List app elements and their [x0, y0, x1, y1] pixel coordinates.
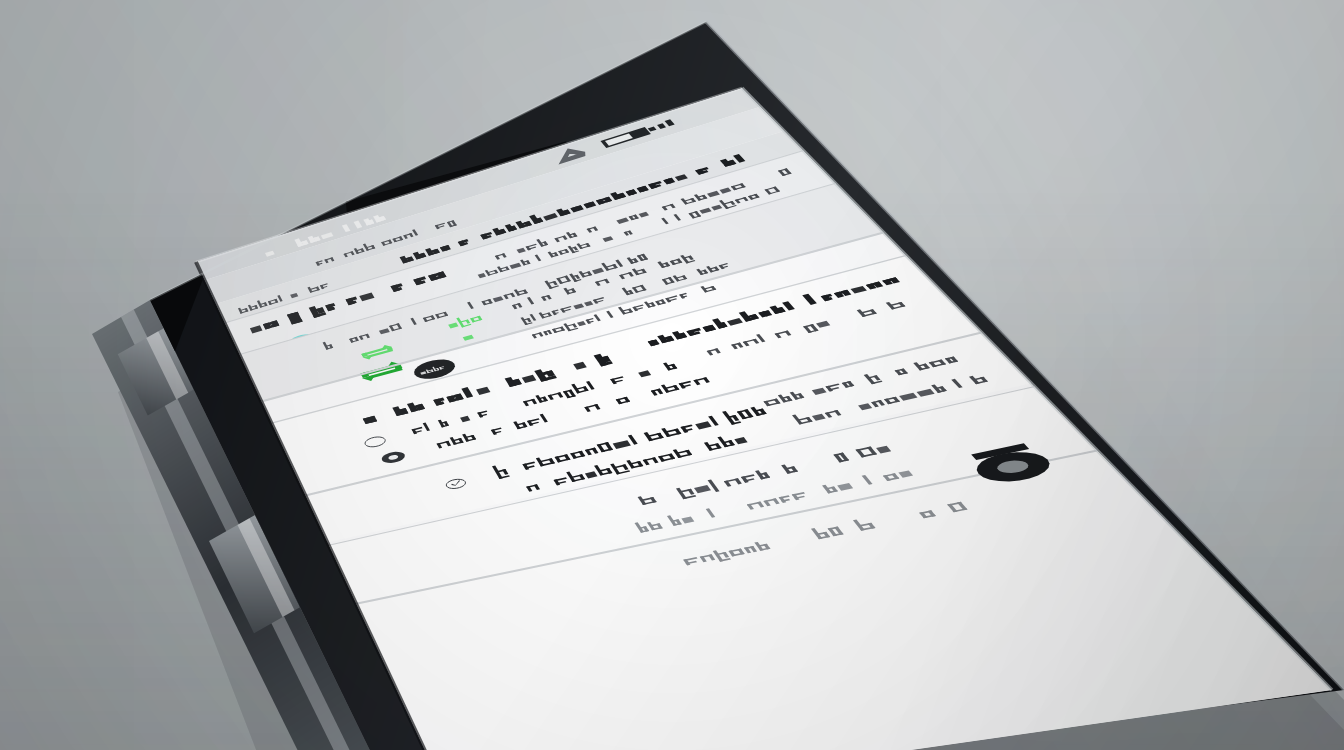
button[interactable]: Phone showing a settings list screen — [0, 0, 1344, 750]
